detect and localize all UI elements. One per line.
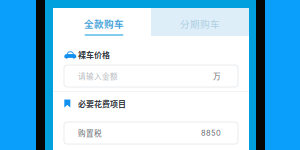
staticText: 裸车价格	[78, 49, 110, 60]
staticText: 全款购车	[84, 16, 124, 30]
staticText: 请输入金额	[78, 70, 118, 81]
staticText: 分期购车	[180, 16, 220, 30]
button[interactable]: 分期购车	[151, 8, 249, 36]
staticText: 8850	[201, 128, 221, 137]
staticText: 万	[213, 70, 221, 81]
staticText: 购置税	[78, 127, 102, 138]
button[interactable]: 全款购车	[53, 8, 151, 36]
staticText: 必要花费项目	[78, 98, 126, 109]
